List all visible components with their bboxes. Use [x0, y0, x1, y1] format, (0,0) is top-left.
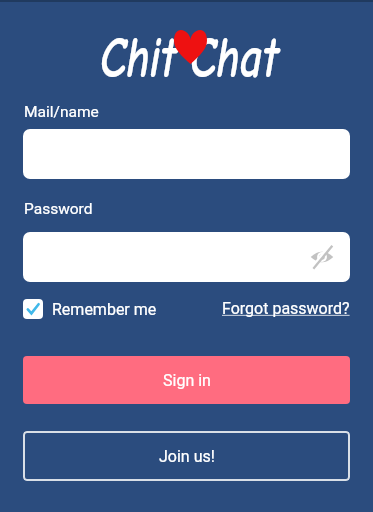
button[interactable]	[310, 245, 334, 269]
staticText: Remember me	[52, 300, 157, 319]
staticText: Password	[24, 200, 93, 218]
staticText: Chit	[100, 24, 176, 92]
staticText: Chat	[190, 24, 278, 92]
button[interactable]	[23, 232, 350, 282]
staticText: Sign in	[163, 371, 211, 390]
staticText: Mail/name	[24, 103, 99, 121]
staticText: Join us!	[159, 447, 215, 466]
button[interactable]: Sign in	[23, 356, 350, 404]
button[interactable]: Remember me	[23, 299, 157, 319]
button[interactable]: Forgot password?	[222, 299, 350, 318]
button[interactable]: Join us!	[23, 431, 350, 481]
button[interactable]	[23, 129, 350, 179]
